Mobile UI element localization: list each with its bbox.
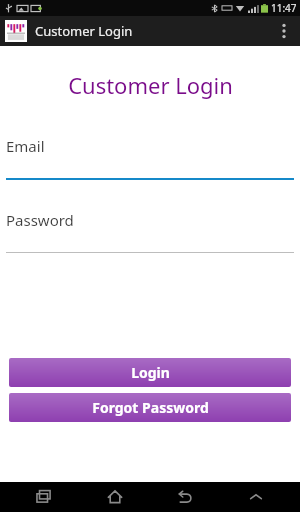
staticText: Login (131, 363, 170, 382)
button[interactable]: More options (272, 16, 296, 46)
staticText: Customer Login (35, 22, 133, 40)
button[interactable]: Show menu (230, 482, 282, 512)
button[interactable]: Home (89, 482, 141, 512)
staticText: Email (6, 136, 45, 156)
button[interactable]: Back (159, 482, 211, 512)
staticText: Customer Login (68, 70, 233, 100)
staticText: Forgot Password (92, 398, 209, 417)
button[interactable]: Recent apps (18, 482, 70, 512)
staticText: Password (6, 210, 74, 230)
button[interactable]: Login (9, 358, 291, 387)
button[interactable]: Forgot Password (9, 393, 291, 422)
staticText: 11:47 (271, 1, 297, 15)
